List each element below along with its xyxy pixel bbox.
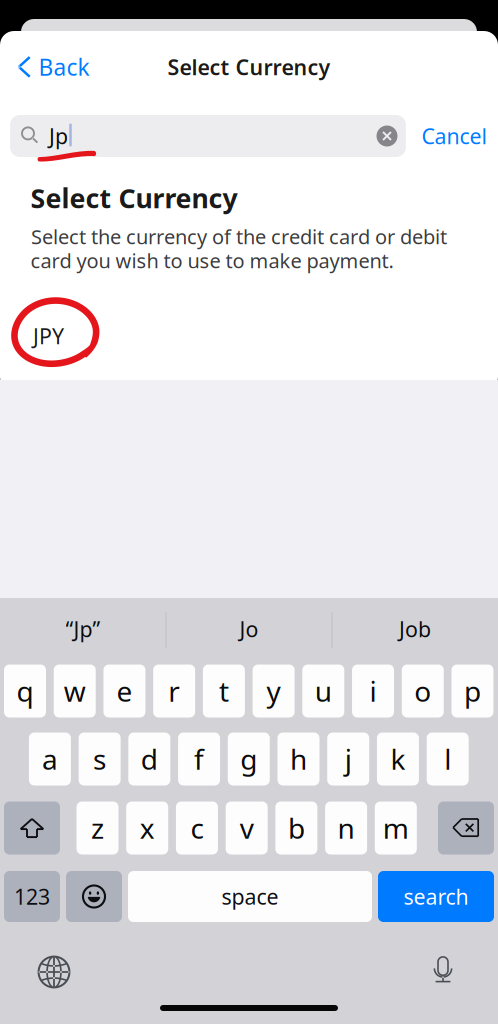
button[interactable]: q (4, 664, 46, 717)
staticText: r (168, 672, 180, 710)
button[interactable]: Cancel (414, 116, 494, 156)
staticText: z (91, 809, 104, 847)
staticText: Back (38, 52, 89, 82)
staticText: v (240, 809, 254, 847)
staticText: y (267, 672, 281, 710)
button[interactable]: 123 (4, 871, 60, 922)
button[interactable]: d (128, 732, 170, 785)
staticText: Select the currency of the credit card o… (31, 223, 447, 250)
staticText: Jp (49, 122, 68, 150)
button[interactable]: r (153, 664, 195, 717)
button[interactable]: l (427, 732, 469, 785)
staticText: n (338, 809, 355, 847)
staticText: h (290, 740, 307, 778)
staticText: space (221, 882, 278, 911)
button[interactable]: k (377, 732, 419, 785)
staticText: d (141, 740, 158, 778)
button[interactable]: b (275, 801, 317, 854)
button[interactable]: f (178, 732, 220, 785)
staticText: Jo (239, 615, 258, 643)
staticText: e (116, 672, 132, 710)
button[interactable]: e (103, 664, 145, 717)
staticText: c (190, 809, 203, 847)
button[interactable]: c (176, 801, 218, 854)
staticText: o (414, 672, 431, 710)
button[interactable]: s (79, 732, 121, 785)
button[interactable]: h (277, 732, 319, 785)
button[interactable]: u (302, 664, 344, 717)
staticText: b (288, 809, 305, 847)
button[interactable]: Back (11, 46, 94, 88)
staticText: i (369, 672, 376, 710)
button[interactable]: w (54, 664, 96, 717)
button[interactable]: y (253, 664, 295, 717)
staticText: Select Currency (167, 53, 330, 81)
staticText: card you wish to use to make payment. (30, 247, 393, 274)
staticText: s (93, 740, 106, 778)
button[interactable]: Shift (4, 801, 60, 854)
button[interactable]: o (402, 664, 444, 717)
button[interactable]: m (375, 801, 417, 854)
staticText: t (219, 672, 229, 710)
button[interactable]: t (203, 664, 245, 717)
staticText: “Jp” (65, 615, 100, 643)
button[interactable]: n (325, 801, 367, 854)
staticText: Cancel (421, 122, 487, 150)
staticText: k (390, 740, 405, 778)
button[interactable]: Emoji (66, 871, 122, 922)
staticText: Select Currency (30, 180, 237, 216)
staticText: JPY (33, 322, 64, 350)
button[interactable]: Jo (166, 602, 332, 656)
button[interactable]: x (126, 801, 168, 854)
button[interactable]: search (378, 871, 494, 922)
button[interactable]: “Jp” (0, 602, 166, 656)
staticText: w (64, 672, 86, 710)
button[interactable]: a (29, 732, 71, 785)
staticText: Job (399, 615, 431, 643)
staticText: u (315, 672, 332, 710)
staticText: x (140, 809, 155, 847)
button[interactable]: space (128, 871, 372, 922)
button[interactable]: Next keyboard (32, 950, 76, 994)
staticText: m (383, 809, 409, 847)
staticText: l (444, 740, 451, 778)
staticText: f (194, 740, 204, 778)
staticText: q (16, 672, 33, 710)
staticText: p (464, 672, 481, 710)
button[interactable]: z (76, 801, 118, 854)
button[interactable]: j (327, 732, 369, 785)
button[interactable]: g (228, 732, 270, 785)
staticText: a (42, 740, 58, 778)
staticText: 123 (14, 882, 50, 911)
button[interactable]: i (352, 664, 394, 717)
button[interactable]: Job (332, 602, 498, 656)
staticText: g (240, 740, 257, 778)
staticText: j (345, 740, 352, 778)
button[interactable]: Clear text (372, 121, 402, 151)
button[interactable]: p (451, 664, 493, 717)
button[interactable]: Delete (438, 801, 494, 854)
staticText: search (403, 882, 468, 911)
button[interactable]: Dictation (421, 948, 465, 992)
button[interactable]: v (226, 801, 268, 854)
